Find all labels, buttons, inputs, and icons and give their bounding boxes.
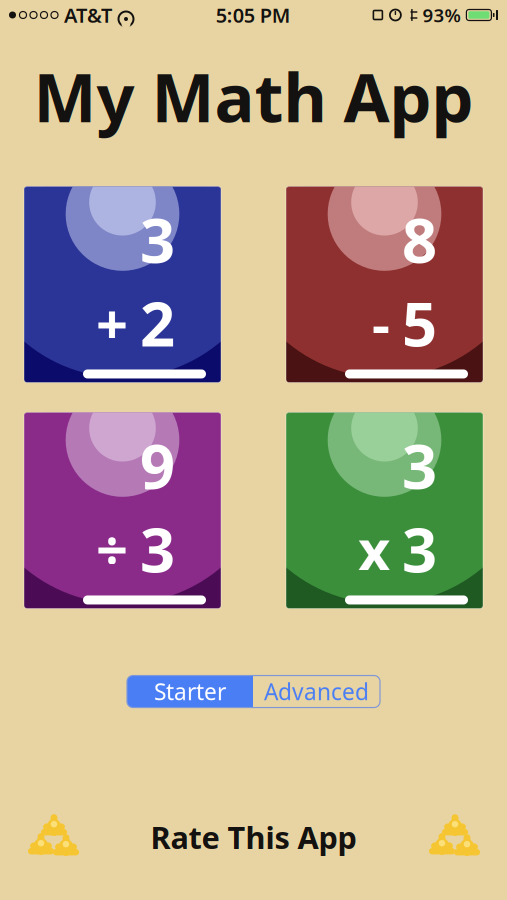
staticText: + bbox=[96, 286, 128, 360]
staticText: x bbox=[358, 512, 390, 586]
staticText: 5 bbox=[402, 282, 437, 363]
staticText: AT&T bbox=[64, 2, 112, 28]
staticText: 3 bbox=[402, 508, 437, 589]
staticText: 3 bbox=[140, 199, 175, 280]
staticText: 8 bbox=[402, 199, 437, 280]
staticText: Advanced bbox=[264, 676, 369, 707]
button[interactable]: Starter bbox=[127, 675, 253, 707]
button[interactable]: Advanced bbox=[253, 675, 380, 707]
staticText: Rate This App bbox=[150, 817, 356, 857]
staticText: 3 bbox=[140, 508, 175, 589]
staticText: My Math App bbox=[33, 52, 473, 140]
button[interactable]: Multiplication bbox=[286, 412, 483, 608]
staticText: 3 bbox=[402, 425, 437, 506]
staticText: 5:05 PM bbox=[216, 2, 291, 28]
button[interactable]: Division bbox=[24, 412, 221, 608]
button[interactable]: Subtraction bbox=[286, 186, 483, 382]
staticText: Starter bbox=[154, 676, 226, 707]
button[interactable]: Rate This App bbox=[150, 817, 356, 857]
staticText: 93% bbox=[422, 3, 460, 27]
staticText: 2 bbox=[140, 282, 175, 363]
staticText: 9 bbox=[140, 425, 175, 506]
button[interactable]: Addition bbox=[24, 186, 221, 382]
staticText: - bbox=[372, 286, 390, 360]
staticText: ÷ bbox=[96, 512, 128, 586]
